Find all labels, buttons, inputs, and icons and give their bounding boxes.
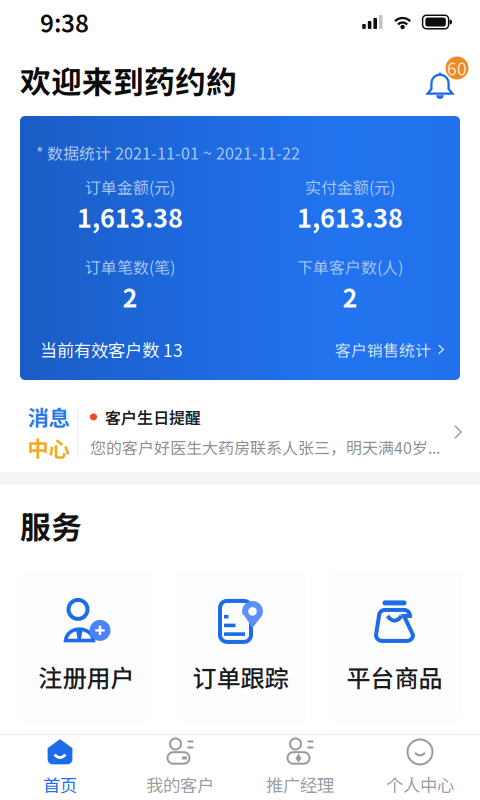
- staticText: 平台商品: [346, 659, 442, 694]
- staticText: 消息: [27, 401, 69, 432]
- staticText: 订单笔数(笔): [85, 255, 175, 278]
- button[interactable]: 个人中心: [360, 735, 480, 800]
- staticText: 欢迎来到药约約: [20, 58, 237, 102]
- staticText: 当前有效客户数 13: [40, 337, 183, 362]
- staticText: 注册用户: [38, 659, 134, 694]
- staticText: * 数据统计 2021-11-01 ~ 2021-11-22: [36, 141, 300, 164]
- staticText: 下单客户数(人): [297, 255, 403, 278]
- staticText: 我的客户: [146, 772, 214, 797]
- staticText: 中心: [27, 432, 69, 463]
- button[interactable]: 推广经理: [240, 735, 360, 800]
- button[interactable]: 平台商品: [328, 570, 461, 722]
- button[interactable]: 订单跟踪: [174, 570, 307, 722]
- button[interactable]: 注册用户: [20, 570, 153, 722]
- button[interactable]: 通知: [421, 56, 469, 104]
- staticText: 客户销售统计: [335, 338, 431, 361]
- staticText: 个人中心: [386, 772, 454, 797]
- staticText: 2: [122, 278, 137, 315]
- staticText: 您的客户好医生大药房联系人张三，明天满40岁...: [90, 435, 440, 459]
- staticText: 推广经理: [266, 772, 334, 797]
- staticText: 订单跟踪: [192, 659, 288, 694]
- button[interactable]: 首页: [0, 735, 120, 800]
- staticText: 60: [447, 55, 467, 81]
- staticText: 订单金额(元): [85, 175, 175, 198]
- button[interactable]: 客户销售统计: [335, 338, 444, 361]
- staticText: 2: [342, 278, 357, 315]
- staticText: 客户生日提醒: [105, 405, 201, 428]
- staticText: 服务: [20, 503, 82, 547]
- button[interactable]: 我的客户: [120, 735, 240, 800]
- staticText: 1,613.38: [77, 198, 183, 235]
- button[interactable]: 消息: [0, 392, 480, 472]
- staticText: 首页: [43, 772, 77, 797]
- staticText: 1,613.38: [297, 198, 403, 235]
- staticText: 9:38: [40, 5, 89, 39]
- staticText: 实付金额(元): [305, 175, 395, 198]
